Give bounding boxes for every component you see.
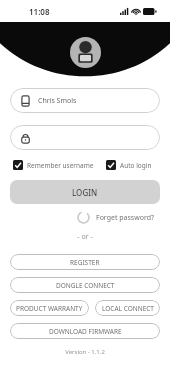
button[interactable]: LOGIN	[10, 180, 160, 204]
button[interactable]: DONGLE CONNECT	[10, 277, 160, 293]
staticText: Remember username	[27, 161, 94, 170]
staticText: LOCAL CONNECT	[102, 304, 154, 313]
button[interactable]: REGISTER	[10, 254, 160, 270]
button[interactable]: LOCAL CONNECT	[95, 300, 160, 316]
staticText: LOGIN	[72, 187, 98, 198]
button[interactable]	[10, 125, 160, 150]
staticText: Version - 1.1.2	[0, 348, 170, 356]
other: Loading	[78, 212, 89, 223]
staticText: DONGLE CONNECT	[56, 281, 115, 290]
staticText: DOWNLOAD FIRMWARE	[49, 327, 122, 336]
staticText: REGISTER	[70, 258, 100, 267]
staticText: - or -	[0, 232, 170, 242]
staticText: Forget password?	[96, 213, 155, 223]
staticText: Auto login	[120, 161, 152, 170]
button[interactable]: PRODUCT WARRANTY	[10, 300, 89, 316]
button[interactable]: Forget password?	[96, 213, 155, 223]
button[interactable]: DOWNLOAD FIRMWARE	[10, 323, 160, 339]
button[interactable]: Auto login	[106, 160, 152, 170]
button[interactable]: Chris Smols	[10, 88, 160, 113]
button[interactable]: Remember username	[13, 160, 94, 170]
staticText: PRODUCT WARRANTY	[16, 304, 83, 313]
staticText: Chris Smols	[38, 96, 77, 106]
staticText: 11:08	[29, 6, 50, 17]
